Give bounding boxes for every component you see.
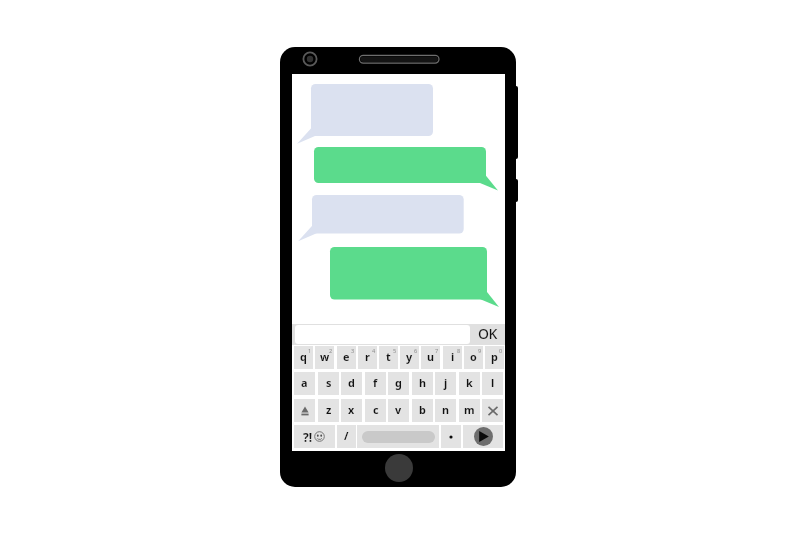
button[interactable]: Space: [357, 425, 439, 448]
button[interactable]: Send: [463, 425, 503, 448]
button[interactable]: Delete: [482, 399, 503, 422]
staticText: f: [373, 375, 378, 390]
button[interactable]: 2: [315, 346, 334, 369]
button[interactable]: 1: [294, 346, 313, 369]
staticText: OK: [478, 324, 497, 343]
button[interactable]: 5: [379, 346, 398, 369]
staticText: 7: [435, 347, 439, 355]
staticText: r: [365, 349, 370, 364]
button[interactable]: z: [318, 399, 339, 422]
staticText: 1: [308, 347, 312, 355]
staticText: l: [491, 375, 495, 390]
staticText: w: [320, 349, 330, 364]
staticText: h: [419, 375, 427, 390]
button[interactable]: n: [435, 399, 456, 422]
staticText: e: [343, 349, 350, 364]
button[interactable]: 4: [358, 346, 377, 369]
button[interactable]: j: [435, 372, 456, 395]
staticText: m: [464, 402, 475, 417]
staticText: d: [348, 375, 355, 390]
staticText: 6: [414, 347, 418, 355]
staticText: t: [386, 349, 391, 364]
staticText: u: [427, 349, 435, 364]
staticText: p: [491, 349, 498, 364]
button[interactable]: x: [341, 399, 362, 422]
button[interactable]: Shift: [294, 399, 315, 422]
button[interactable]: 7: [421, 346, 440, 369]
staticText: 3: [351, 347, 355, 355]
button[interactable]: Period: [441, 425, 461, 448]
staticText: v: [395, 402, 402, 417]
staticText: k: [466, 375, 473, 390]
staticText: i: [451, 349, 455, 364]
staticText: x: [348, 402, 355, 417]
button[interactable]: l: [482, 372, 503, 395]
button[interactable]: a: [294, 372, 315, 395]
staticText: /: [344, 428, 349, 443]
button[interactable]: h: [412, 372, 433, 395]
button[interactable]: v: [388, 399, 409, 422]
staticText: b: [419, 402, 426, 417]
staticText: j: [444, 375, 448, 390]
button[interactable]: Symbols and emoji: [294, 425, 335, 448]
staticText: y: [406, 349, 413, 364]
staticText: ?!: [303, 429, 313, 445]
button[interactable]: /: [337, 425, 356, 448]
button[interactable]: f: [365, 372, 386, 395]
staticText: q: [300, 349, 307, 364]
staticText: a: [301, 375, 308, 390]
button[interactable]: 0: [485, 346, 504, 369]
staticText: g: [395, 375, 402, 390]
button[interactable]: b: [412, 399, 433, 422]
staticText: 9: [478, 347, 482, 355]
button[interactable]: k: [459, 372, 480, 395]
staticText: s: [326, 375, 332, 390]
staticText: 0: [499, 347, 503, 355]
staticText: o: [470, 349, 477, 364]
button[interactable]: s: [318, 372, 339, 395]
button[interactable]: m: [459, 399, 480, 422]
staticText: 8: [457, 347, 461, 355]
button[interactable]: 9: [464, 346, 483, 369]
staticText: 4: [372, 347, 376, 355]
staticText: n: [442, 402, 450, 417]
button[interactable]: g: [388, 372, 409, 395]
button[interactable]: 6: [400, 346, 419, 369]
staticText: z: [326, 402, 332, 417]
button[interactable]: d: [341, 372, 362, 395]
button[interactable]: Home: [385, 454, 413, 482]
button[interactable]: 8: [443, 346, 462, 369]
staticText: 2: [329, 347, 333, 355]
button[interactable]: c: [365, 399, 386, 422]
button[interactable]: OK: [470, 324, 505, 345]
staticText: 5: [393, 347, 397, 355]
staticText: c: [373, 402, 379, 417]
button[interactable]: 3: [337, 346, 356, 369]
